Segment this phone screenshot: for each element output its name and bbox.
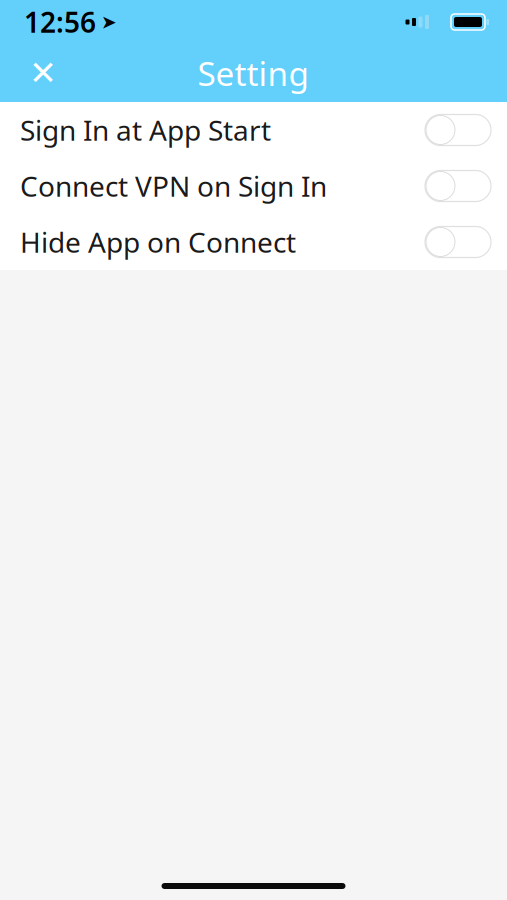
staticText: Connect VPN on Sign In (20, 167, 327, 205)
button[interactable]: Connect VPN on Sign In (0, 158, 507, 214)
staticText: Sign In at App Start (20, 111, 271, 149)
button[interactable]: Close (17, 47, 69, 99)
staticText: ➤ (101, 11, 117, 33)
button[interactable]: Sign In at App Start (0, 102, 507, 158)
staticText: ✕ (29, 54, 57, 92)
button[interactable]: Hide App on Connect (0, 214, 507, 270)
staticText: Hide App on Connect (20, 223, 296, 261)
staticText: 12:56 (24, 3, 96, 41)
staticText: Setting (197, 51, 309, 95)
